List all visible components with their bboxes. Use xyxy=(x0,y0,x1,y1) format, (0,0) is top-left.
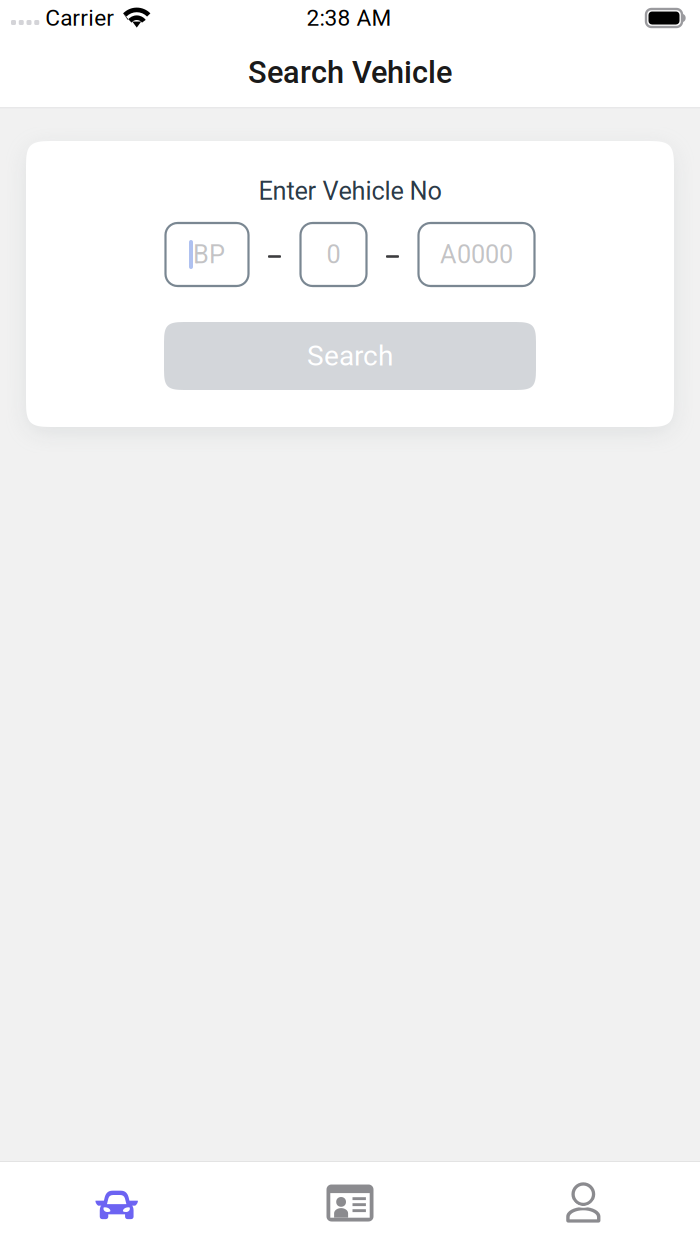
staticText: Carrier xyxy=(45,5,114,31)
button[interactable]: A0000 xyxy=(418,223,534,286)
staticText: Search xyxy=(307,340,393,372)
staticText: Search Vehicle xyxy=(248,54,452,90)
staticText: BP xyxy=(193,240,225,269)
button[interactable]: Search xyxy=(164,322,536,390)
staticText: Enter Vehicle No xyxy=(258,176,441,206)
button[interactable]: BP xyxy=(165,223,248,286)
button[interactable]: Vehicles xyxy=(0,1162,233,1244)
staticText: A0000 xyxy=(440,240,513,269)
staticText: 0 xyxy=(326,240,340,269)
button[interactable]: License xyxy=(233,1162,467,1244)
button[interactable]: 0 xyxy=(300,223,366,286)
button[interactable]: Profile xyxy=(467,1162,700,1244)
staticText: 2:38 AM xyxy=(306,5,391,31)
